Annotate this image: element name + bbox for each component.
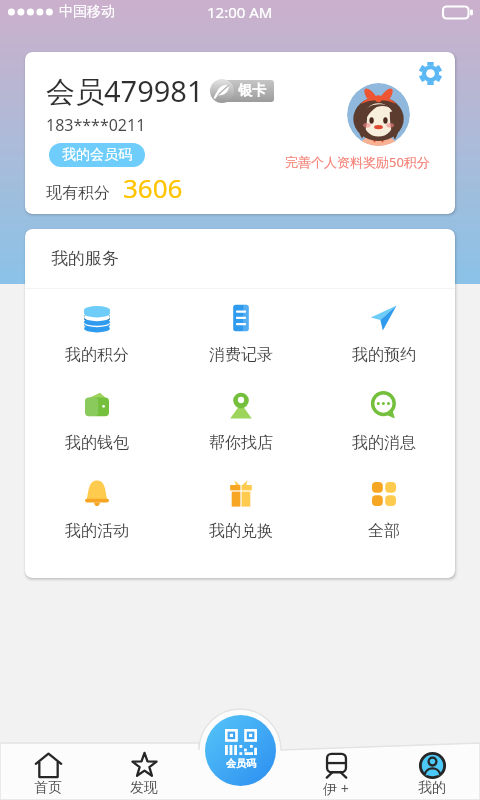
button[interactable]: 我的积分 [25,296,169,384]
staticText: 伊 + [323,779,349,798]
button[interactable]: 全部 [312,472,455,560]
staticText: 会员码 [226,757,256,770]
button[interactable]: 我的活动 [25,472,169,560]
staticText: 全部 [368,521,400,541]
staticText: 我的预约 [352,345,416,365]
staticText: 我的消息 [352,433,416,453]
staticText: 183****0211 [46,114,146,136]
staticText: 我的会员码 [62,146,132,164]
staticText: 首页 [34,779,62,797]
staticText: 消费记录 [209,345,273,365]
button[interactable]: 会员码 [205,715,276,786]
button[interactable]: 帮你找店 [169,384,312,472]
staticText: 发现 [130,779,158,797]
button[interactable]: 我的钱包 [25,384,169,472]
staticText: 3606 [123,170,183,205]
button[interactable]: 首页 [0,742,96,800]
staticText: 我的积分 [65,345,129,365]
button[interactable]: 发现 [96,742,192,800]
button[interactable]: 我的会员码 [49,143,145,167]
staticText: 帮你找店 [209,433,273,453]
button[interactable]: 我的消息 [312,384,455,472]
staticText: 会员479981 [46,71,204,111]
staticText: 我的 [418,779,446,797]
staticText: 中国移动 [59,3,115,21]
staticText: 我的钱包 [65,433,129,453]
button[interactable]: Settings [418,61,443,86]
staticText: 现有积分 [46,183,110,203]
button[interactable]: 消费记录 [169,296,312,384]
button[interactable]: 我的兑换 [169,472,312,560]
staticText: 我的兑换 [209,521,273,541]
staticText: 我的活动 [65,521,129,541]
staticText: 完善个人资料奖励50积分 [285,153,430,171]
staticText: 12:00 AM [207,2,273,22]
staticText: 银卡 [238,82,266,100]
button[interactable]: 我的预约 [312,296,455,384]
button[interactable]: 伊 + [288,742,384,800]
button[interactable]: 我的 [384,742,480,800]
button[interactable]: Avatar [347,83,410,146]
staticText: 我的服务 [51,248,119,269]
